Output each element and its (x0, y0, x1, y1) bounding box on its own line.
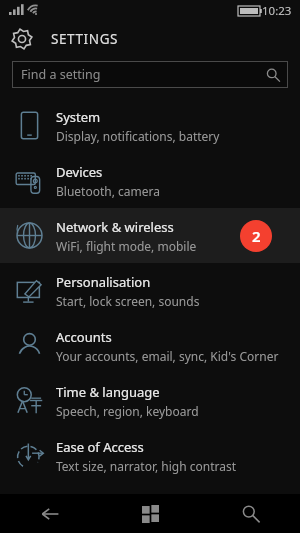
staticText: Personalisation (56, 273, 151, 291)
staticText: Your accounts, email, sync, Kid's Corner (56, 348, 279, 364)
staticText: Display, notifications, battery (56, 128, 220, 144)
staticText: Ease of Access (56, 438, 144, 456)
staticText: Privacy (56, 499, 100, 517)
staticText: Bluetooth, camera (56, 183, 160, 199)
button[interactable]: Search (200, 494, 300, 533)
staticText: Text size, narrator, high contrast (56, 458, 236, 474)
staticText: Time & language (56, 383, 160, 401)
staticText: Accounts (56, 328, 112, 346)
button[interactable]: Network & wireless (0, 208, 300, 263)
staticText: SETTINGS (51, 30, 119, 48)
staticText: Devices (56, 163, 103, 181)
button[interactable]: Accounts (0, 318, 300, 373)
staticText: System (56, 108, 101, 126)
button[interactable]: Back (0, 494, 100, 533)
staticText: 2 (252, 226, 261, 246)
button[interactable]: Personalisation (0, 263, 300, 318)
button[interactable]: Devices (0, 153, 300, 208)
staticText: Start, lock screen, sounds (56, 293, 200, 309)
button[interactable]: Privacy (0, 483, 300, 533)
staticText: Find a setting (21, 66, 101, 83)
button[interactable]: Ease of Access (0, 428, 300, 483)
staticText: Network & wireless (56, 218, 174, 236)
staticText: Speech, region, keyboard (56, 403, 199, 419)
button[interactable]: Time & language (0, 373, 300, 428)
button[interactable]: Start (100, 494, 200, 533)
staticText: 10:23 (262, 3, 292, 19)
staticText: WiFi, flight mode, mobile (56, 238, 197, 254)
button[interactable]: Find a setting (12, 61, 288, 88)
button[interactable]: System (0, 98, 300, 153)
